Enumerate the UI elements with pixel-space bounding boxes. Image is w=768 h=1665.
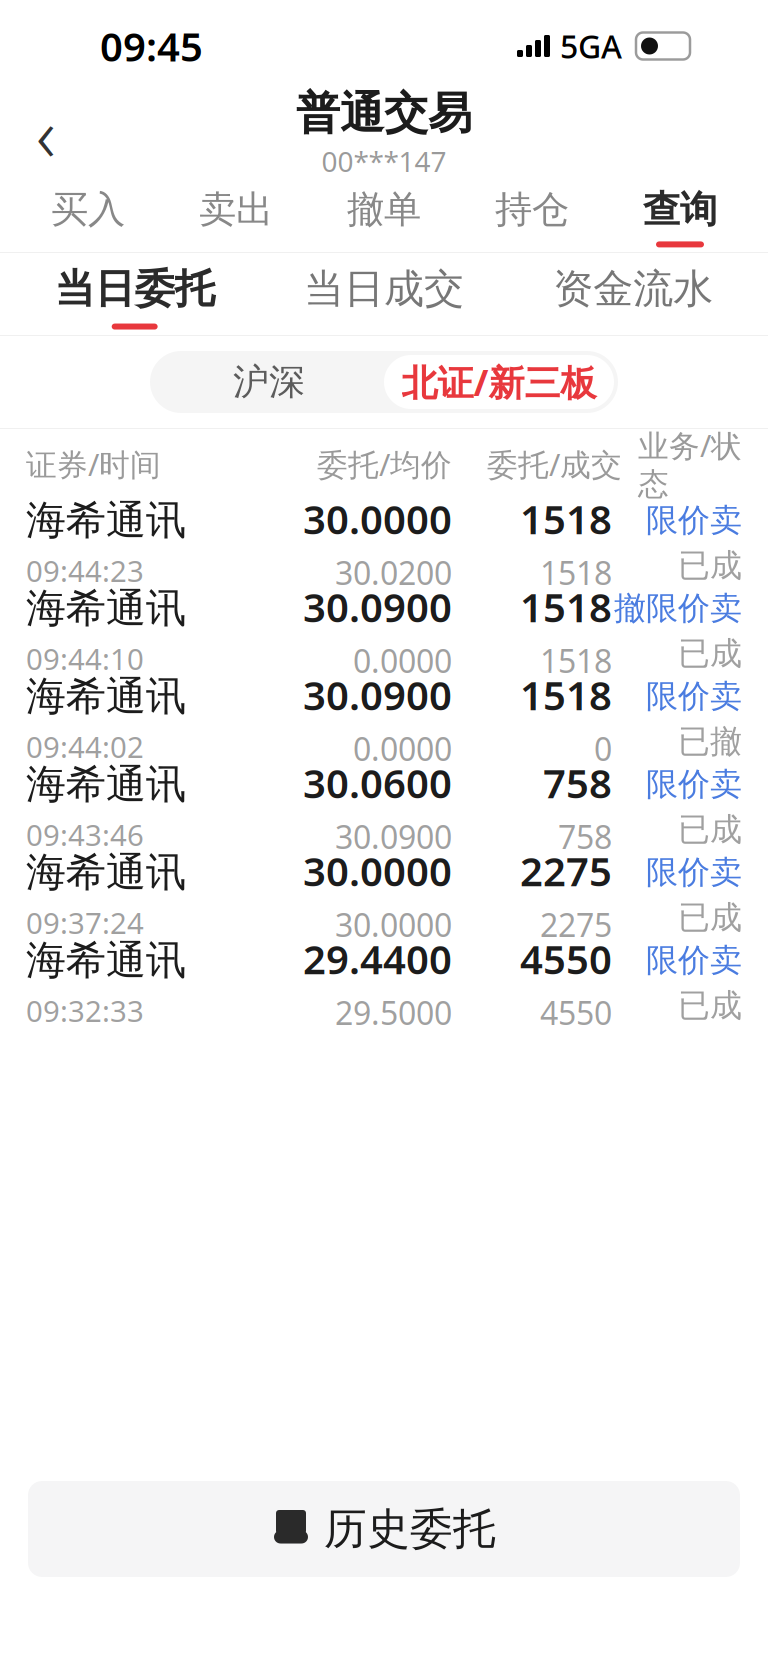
staticText: 历史委托 <box>324 1503 496 1555</box>
staticText: 09:44:23 <box>26 551 144 590</box>
staticText: 委托/均价 <box>317 444 452 484</box>
button[interactable]: 海希通讯 <box>0 851 768 939</box>
staticText: 30.0900 <box>335 815 452 858</box>
staticText: 已撤 <box>678 722 742 761</box>
staticText: 已成 <box>678 546 742 585</box>
staticText: 30.0200 <box>335 551 452 594</box>
staticText: 海希通讯 <box>26 672 186 721</box>
button[interactable]: 海希通讯 <box>0 763 768 851</box>
staticText: 758 <box>558 815 612 858</box>
staticText: 买入 <box>51 187 125 232</box>
button[interactable]: 买入 <box>14 173 162 253</box>
staticText: 1518 <box>520 580 612 633</box>
button[interactable]: 北证/新三板 <box>384 355 614 409</box>
staticText: 09:44:02 <box>26 727 144 766</box>
staticText: 当日委托 <box>55 264 215 313</box>
staticText: 758 <box>543 756 612 809</box>
button[interactable]: 海希通讯 <box>0 675 768 763</box>
staticText: 已成 <box>678 634 742 673</box>
staticText: 委托/成交 <box>487 444 622 484</box>
staticText: 已成 <box>678 986 742 1025</box>
button[interactable]: 历史委托 <box>28 1481 740 1577</box>
staticText: 海希通讯 <box>26 936 186 985</box>
staticText: 普通交易 <box>296 86 472 140</box>
staticText: 海希通讯 <box>26 848 186 897</box>
staticText: 1518 <box>520 668 612 721</box>
staticText: 30.0000 <box>335 903 452 946</box>
staticText: 0.0000 <box>353 727 452 770</box>
staticText: 09:37:24 <box>26 903 144 942</box>
button[interactable]: 当日成交 <box>259 250 509 337</box>
button[interactable]: 沪深 <box>154 359 384 405</box>
staticText: 30.0000 <box>303 844 452 897</box>
button[interactable]: 当日委托 <box>10 250 259 337</box>
staticText: 1518 <box>540 639 612 682</box>
button[interactable]: 海希通讯 <box>0 587 768 675</box>
staticText: 30.0900 <box>303 580 452 633</box>
staticText: 撤单 <box>347 187 421 232</box>
staticText: 5GA <box>560 25 622 67</box>
staticText: 30.0000 <box>303 492 452 545</box>
staticText: 查询 <box>643 187 717 232</box>
staticText: 1518 <box>540 551 612 594</box>
staticText: 2275 <box>540 903 612 946</box>
staticText: 沪深 <box>233 360 305 404</box>
staticText: 卖出 <box>199 187 273 232</box>
staticText: 限价卖 <box>646 853 742 892</box>
staticText: 海希通讯 <box>26 496 186 545</box>
staticText: 00***147 <box>321 142 446 180</box>
staticText: 资金流水 <box>553 264 713 313</box>
button[interactable]: 查询 <box>606 173 754 253</box>
button[interactable]: 海希通讯 <box>0 939 768 1027</box>
staticText: 限价卖 <box>646 677 742 716</box>
button[interactable]: 撤单 <box>310 173 458 253</box>
button[interactable]: 海希通讯 <box>0 499 768 587</box>
staticText: 09:44:10 <box>26 639 144 678</box>
staticText: 30.0600 <box>303 756 452 809</box>
staticText: 业务/状态 <box>638 425 742 503</box>
staticText: 持仓 <box>495 187 569 232</box>
button[interactable]: 持仓 <box>458 173 606 253</box>
staticText: 已成 <box>678 898 742 937</box>
staticText: 海希通讯 <box>26 584 186 633</box>
staticText: 限价卖 <box>646 501 742 540</box>
staticText: 2275 <box>520 844 612 897</box>
button[interactable]: 卖出 <box>162 173 310 253</box>
staticText: 29.5000 <box>335 991 452 1034</box>
staticText: 0.0000 <box>353 639 452 682</box>
staticText: 4550 <box>540 991 612 1034</box>
staticText: ‹ <box>36 83 56 183</box>
staticText: 海希通讯 <box>26 760 186 809</box>
staticText: 限价卖 <box>646 941 742 980</box>
staticText: 北证/新三板 <box>401 358 596 406</box>
staticText: 09:32:33 <box>26 991 144 1030</box>
staticText: 1518 <box>520 492 612 545</box>
staticText: 29.4400 <box>303 932 452 985</box>
staticText: 0 <box>594 727 612 770</box>
staticText: 限价卖 <box>646 765 742 804</box>
staticText: 已成 <box>678 810 742 849</box>
staticText: 4550 <box>520 932 612 985</box>
staticText: 09:45 <box>100 19 203 72</box>
button[interactable]: 资金流水 <box>509 250 758 337</box>
button[interactable]: 返回 <box>8 95 84 171</box>
staticText: 30.0900 <box>303 668 452 721</box>
staticText: 证券/时间 <box>26 444 161 484</box>
staticText: 09:43:46 <box>26 815 144 854</box>
staticText: 撤限价卖 <box>614 589 742 628</box>
staticText: 当日成交 <box>304 264 464 313</box>
